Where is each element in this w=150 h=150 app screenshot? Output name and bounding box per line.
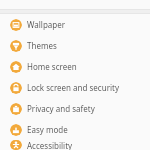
staticText: Privacy and safety bbox=[27, 103, 95, 114]
staticText: Home screen bbox=[27, 61, 77, 72]
staticText: Lock screen and security bbox=[27, 82, 119, 93]
button[interactable]: Privacy and safety bbox=[0, 98, 150, 119]
button[interactable]: Accessibility bbox=[0, 140, 150, 150]
button[interactable]: Themes bbox=[0, 35, 150, 56]
staticText: Themes bbox=[27, 40, 57, 51]
staticText: Accessibility bbox=[27, 140, 73, 150]
staticText: Easy mode bbox=[27, 124, 68, 135]
button[interactable]: Lock screen and security bbox=[0, 77, 150, 98]
staticText: Wallpaper bbox=[27, 19, 66, 30]
button[interactable]: Home screen bbox=[0, 56, 150, 77]
button[interactable]: Easy mode bbox=[0, 119, 150, 140]
button[interactable]: Wallpaper bbox=[0, 14, 150, 35]
